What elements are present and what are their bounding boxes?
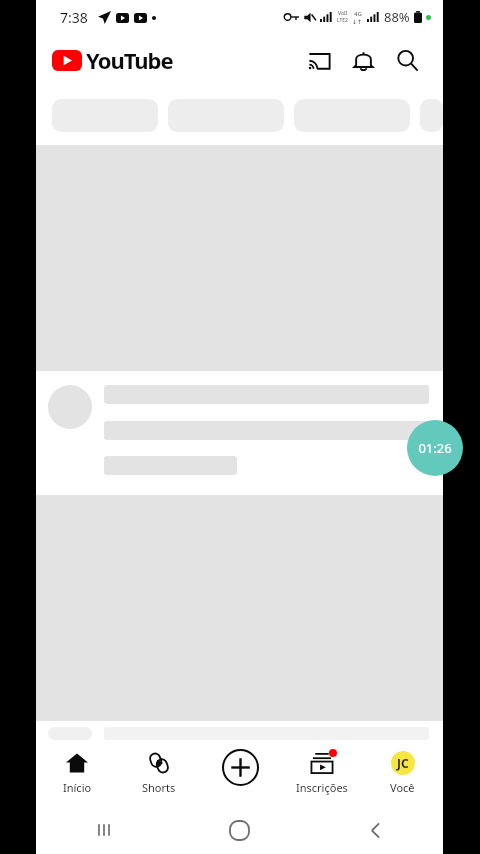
staticText: ↓↑ — [352, 18, 363, 25]
button[interactable]: Create — [200, 740, 281, 806]
button[interactable]: Início — [36, 740, 118, 806]
button[interactable]: Notifications — [341, 38, 385, 82]
button[interactable]: Inscrições — [281, 740, 362, 806]
staticText: VoII — [338, 10, 348, 17]
staticText: Shorts — [142, 780, 176, 795]
staticText: LTE2 — [337, 17, 348, 24]
staticText: 01:26 — [418, 439, 452, 457]
staticText: 88% — [384, 8, 410, 26]
button[interactable]: Recents — [36, 806, 171, 854]
button[interactable]: Shorts — [118, 740, 200, 806]
staticText: Início — [63, 780, 92, 795]
staticText: Inscrições — [296, 780, 348, 795]
button[interactable]: Timer 01:26 — [407, 420, 463, 476]
button[interactable]: Back — [307, 806, 443, 854]
staticText: 4G — [354, 10, 362, 18]
staticText: JC — [397, 755, 409, 771]
button[interactable]: Search — [385, 38, 429, 82]
button[interactable]: YouTube — [52, 41, 173, 79]
button[interactable] — [420, 99, 443, 132]
button[interactable]: JC — [362, 740, 443, 806]
button[interactable]: Cast — [297, 38, 341, 82]
staticText: YouTube — [86, 45, 173, 75]
button[interactable]: Home — [171, 806, 307, 854]
staticText: 7:38 — [60, 8, 88, 27]
staticText: Você — [390, 780, 415, 795]
